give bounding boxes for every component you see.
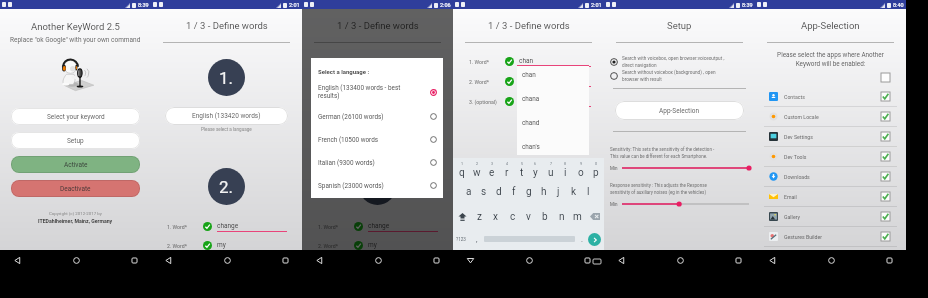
button[interactable]: f	[507, 185, 520, 198]
button[interactable]: 9	[574, 162, 587, 180]
button[interactable]: English (133400 words - best results)	[318, 79, 437, 105]
button[interactable]: Sensitivity slider	[622, 200, 749, 208]
button[interactable]: Contacts	[769, 87, 890, 106]
staticText: l	[587, 186, 590, 198]
staticText: i	[564, 167, 567, 179]
button[interactable]: Deactivate	[11, 180, 140, 197]
button[interactable]: chan	[517, 71, 589, 79]
staticText: Select your keyword	[47, 113, 105, 121]
button[interactable]: Dev Settings	[769, 127, 890, 146]
button[interactable]: m	[571, 210, 584, 223]
staticText: Dev Tools	[784, 154, 881, 160]
button[interactable]: a	[462, 185, 475, 198]
button[interactable]: c	[506, 210, 519, 223]
button[interactable]: Search with voicebox, open browser:voice…	[610, 56, 749, 68]
button[interactable]: Recents	[280, 255, 290, 265]
button[interactable]: b	[538, 210, 551, 223]
button[interactable]: Enabled	[881, 152, 890, 161]
button[interactable]: Home	[373, 255, 383, 265]
button[interactable]: Enabled	[881, 112, 890, 121]
button[interactable]: Enabled	[881, 232, 890, 241]
button[interactable]: Recents	[431, 255, 441, 265]
button[interactable]: Back	[465, 255, 475, 265]
button[interactable]: z	[473, 210, 486, 223]
button[interactable]: Back	[314, 255, 324, 265]
staticText: 9	[580, 162, 583, 166]
button[interactable]: Gallery	[769, 207, 890, 226]
button[interactable]: Shift	[456, 210, 469, 223]
button[interactable]: d	[492, 185, 505, 198]
button[interactable]: Back	[163, 255, 173, 265]
button[interactable]: Sensitivity slider	[622, 164, 749, 172]
button[interactable]: Home	[71, 255, 81, 265]
button[interactable]: .	[579, 233, 585, 245]
button[interactable]: chand	[517, 119, 589, 127]
button[interactable]: x	[489, 210, 502, 223]
button[interactable]: Recents	[733, 255, 743, 265]
button[interactable]: Italian (9300 words)	[318, 151, 437, 174]
button[interactable]: Enabled	[881, 92, 890, 101]
button[interactable]: 7	[544, 162, 557, 180]
button[interactable]: Recents	[582, 255, 592, 265]
button[interactable]: Search without voicebox (background) , o…	[610, 70, 749, 82]
button[interactable]: Enabled	[881, 212, 890, 221]
button[interactable]: l	[582, 185, 595, 198]
button[interactable]: Enabled	[881, 132, 890, 141]
staticText: German (26100 words)	[318, 113, 430, 121]
button[interactable]: Home	[826, 255, 836, 265]
button[interactable]: 2	[470, 162, 483, 180]
button[interactable]: Back	[616, 255, 626, 265]
button[interactable]: Home	[675, 255, 685, 265]
button[interactable]: 5	[515, 162, 528, 180]
button[interactable]: Select all	[881, 73, 890, 82]
button[interactable]: Activate	[11, 156, 140, 173]
button[interactable]: French (10500 words	[318, 128, 437, 151]
staticText: 4	[506, 162, 509, 166]
button[interactable]: Back	[12, 255, 22, 265]
button[interactable]: German (26100 words)	[318, 105, 437, 128]
button[interactable]: 4	[500, 162, 513, 180]
button[interactable]: Back	[767, 255, 777, 265]
button[interactable]: v	[522, 210, 535, 223]
button[interactable]: Enter	[588, 233, 601, 246]
button[interactable]: Gestures Builder	[769, 227, 890, 246]
button[interactable]: Keyboard	[592, 256, 602, 266]
button[interactable]: g	[522, 185, 535, 198]
button[interactable]: k	[567, 185, 580, 198]
button[interactable]: App-Selection	[615, 101, 744, 120]
button[interactable]: Select your keyword	[11, 108, 140, 125]
button[interactable]: Custom Locale	[769, 107, 890, 126]
button[interactable]: Downloads	[769, 167, 890, 186]
staticText: Spanish (23000 words)	[318, 182, 430, 190]
button[interactable]: ,	[474, 233, 480, 245]
button[interactable]: 3	[485, 162, 498, 180]
staticText: change	[368, 222, 390, 230]
button[interactable]: Dev Tools	[769, 147, 890, 166]
button[interactable]: English (133420 words)	[165, 107, 288, 125]
button[interactable]: Home	[524, 255, 534, 265]
button[interactable]: h	[537, 185, 550, 198]
button[interactable]: chan's	[517, 143, 589, 151]
button[interactable]: English (133420 words)	[316, 107, 439, 125]
button[interactable]: 6	[529, 162, 542, 180]
button[interactable]: 8	[559, 162, 572, 180]
button[interactable]: chana	[517, 95, 589, 103]
button[interactable]: Enabled	[881, 172, 890, 181]
button[interactable]: j	[552, 185, 565, 198]
button[interactable]: 1	[455, 162, 468, 180]
button[interactable]: Email	[769, 187, 890, 206]
button[interactable]: n	[555, 210, 568, 223]
button[interactable]: 0	[589, 162, 602, 180]
button[interactable]: Home	[222, 255, 232, 265]
button[interactable]: Recents	[129, 255, 139, 265]
staticText: x	[493, 211, 498, 223]
button[interactable]: Recents	[884, 255, 894, 265]
button[interactable]: s	[477, 185, 490, 198]
staticText: 1	[461, 162, 464, 166]
button[interactable]: Enabled	[881, 192, 890, 201]
button[interactable]: Setup	[11, 132, 140, 149]
button[interactable]: Spanish (23000 words)	[318, 174, 437, 197]
button[interactable]: Backspace	[588, 210, 601, 223]
button[interactable]: ?123	[456, 237, 466, 242]
